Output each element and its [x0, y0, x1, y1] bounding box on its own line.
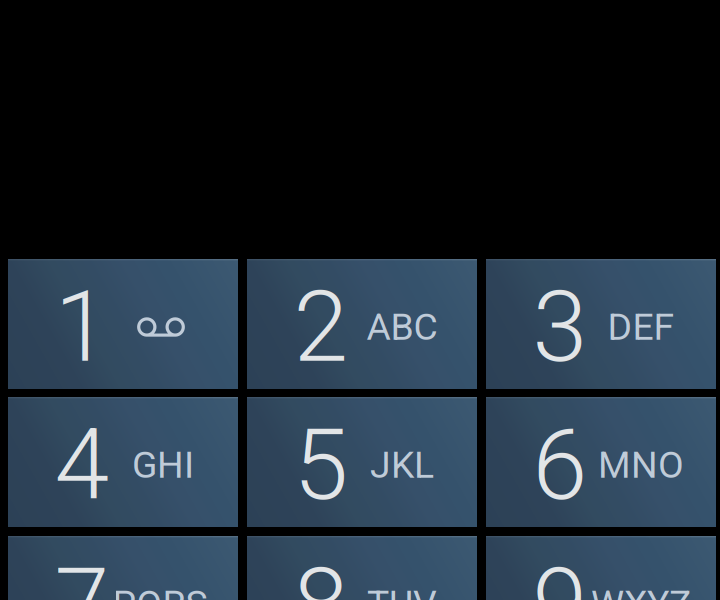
button[interactable]: 1: [8, 259, 238, 389]
staticText: 3: [532, 269, 587, 385]
staticText: 9: [532, 546, 587, 600]
staticText: 5: [293, 407, 348, 523]
button[interactable]: 7: [8, 536, 238, 600]
staticText: 7: [54, 546, 109, 600]
staticText: 1: [54, 269, 109, 385]
staticText: GHI: [132, 443, 194, 487]
button[interactable]: 4: [8, 397, 238, 527]
staticText: TUV: [367, 582, 437, 600]
staticText: 6: [532, 407, 587, 523]
staticText: PQRS: [112, 582, 207, 600]
staticText: ABC: [366, 305, 437, 349]
button[interactable]: 9: [486, 536, 716, 600]
staticText: WXYZ: [591, 582, 691, 600]
button[interactable]: 2: [247, 259, 477, 389]
staticText: DEF: [607, 305, 674, 349]
staticText: 8: [293, 546, 348, 600]
button[interactable]: 8: [247, 536, 477, 600]
staticText: 4: [54, 407, 109, 523]
button[interactable]: 3: [486, 259, 716, 389]
staticText: JKL: [370, 443, 434, 487]
button[interactable]: 6: [486, 397, 716, 527]
staticText: 2: [293, 269, 348, 385]
button[interactable]: 5: [247, 397, 477, 527]
staticText: MNO: [598, 443, 684, 487]
